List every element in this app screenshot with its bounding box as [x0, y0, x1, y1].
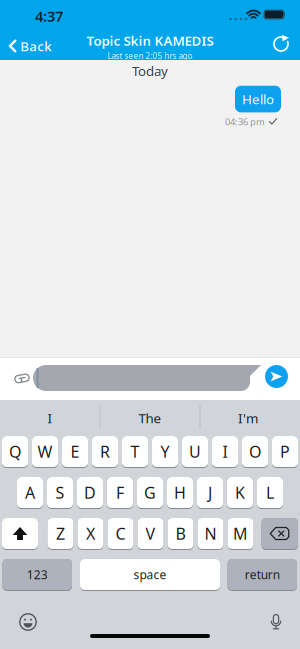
- staticText: K: [235, 482, 245, 503]
- staticText: X: [86, 523, 95, 544]
- staticText: I'm: [238, 409, 258, 427]
- staticText: I: [222, 441, 227, 462]
- staticText: Q: [9, 441, 21, 462]
- button[interactable]: Q: [2, 436, 28, 468]
- button[interactable]: K: [227, 477, 253, 509]
- button[interactable]: V: [137, 518, 163, 550]
- button[interactable]: Send: [265, 365, 288, 388]
- button[interactable]: I'm: [199, 400, 297, 436]
- button[interactable]: A: [17, 477, 43, 509]
- button[interactable]: I: [1, 400, 99, 436]
- staticText: O: [249, 441, 261, 462]
- button[interactable]: Attach file: [10, 366, 34, 390]
- button[interactable]: T: [122, 436, 148, 468]
- staticText: C: [115, 523, 125, 544]
- button[interactable]: H: [167, 477, 193, 509]
- button[interactable]: G: [137, 477, 163, 509]
- staticText: T: [130, 441, 139, 462]
- staticText: Topic Skin KAMEDIS: [86, 32, 213, 49]
- staticText: 123: [27, 566, 48, 582]
- staticText: A: [25, 482, 35, 503]
- staticText: R: [100, 441, 110, 462]
- staticText: B: [175, 523, 185, 544]
- staticText: Hello: [242, 90, 274, 108]
- staticText: J: [208, 482, 212, 503]
- staticText: The: [138, 409, 161, 427]
- button[interactable]: J: [197, 477, 223, 509]
- button[interactable]: P: [272, 436, 298, 468]
- staticText: P: [280, 441, 290, 462]
- staticText: Z: [56, 523, 65, 544]
- staticText: M: [233, 523, 248, 544]
- staticText: F: [116, 482, 124, 503]
- button[interactable]: C: [107, 518, 133, 550]
- button[interactable]: Refresh: [266, 28, 296, 60]
- button[interactable]: Z: [47, 518, 73, 550]
- staticText: I: [47, 409, 52, 427]
- staticText: Last seen 2:05 hrs ago: [107, 50, 192, 61]
- staticText: V: [145, 523, 155, 544]
- button[interactable]: Delete: [261, 518, 298, 550]
- staticText: H: [174, 482, 186, 503]
- button[interactable]: Shift: [2, 518, 38, 550]
- staticText: D: [84, 482, 96, 503]
- button[interactable]: The: [101, 400, 199, 436]
- button[interactable]: D: [77, 477, 103, 509]
- staticText: space: [133, 566, 166, 582]
- button[interactable]: Y: [152, 436, 178, 468]
- staticText: Today: [132, 62, 168, 80]
- button[interactable]: Message input: [33, 365, 261, 391]
- staticText: W: [37, 441, 52, 462]
- button[interactable]: M: [227, 518, 253, 550]
- staticText: Y: [160, 441, 169, 462]
- staticText: N: [204, 523, 216, 544]
- button[interactable]: N: [197, 518, 223, 550]
- staticText: G: [144, 482, 156, 503]
- staticText: Back: [20, 37, 51, 55]
- staticText: S: [55, 482, 64, 503]
- staticText: return: [245, 566, 280, 582]
- staticText: L: [266, 482, 274, 503]
- button[interactable]: L: [257, 477, 283, 509]
- staticText: 4:37: [35, 6, 63, 26]
- button[interactable]: 123: [2, 559, 72, 591]
- button[interactable]: I: [212, 436, 238, 468]
- button[interactable]: W: [32, 436, 58, 468]
- button[interactable]: Emoji: [13, 607, 43, 637]
- button[interactable]: U: [182, 436, 208, 468]
- button[interactable]: Back: [1, 30, 51, 62]
- button[interactable]: return: [227, 559, 297, 591]
- button[interactable]: R: [92, 436, 118, 468]
- button[interactable]: space: [80, 559, 220, 591]
- button[interactable]: O: [242, 436, 268, 468]
- staticText: 04:36 pm: [225, 115, 265, 128]
- button[interactable]: F: [107, 477, 133, 509]
- button[interactable]: Dictation: [264, 607, 288, 637]
- button[interactable]: S: [47, 477, 73, 509]
- button[interactable]: E: [62, 436, 88, 468]
- staticText: U: [189, 441, 201, 462]
- staticText: E: [70, 441, 79, 462]
- button[interactable]: B: [167, 518, 193, 550]
- button[interactable]: X: [77, 518, 103, 550]
